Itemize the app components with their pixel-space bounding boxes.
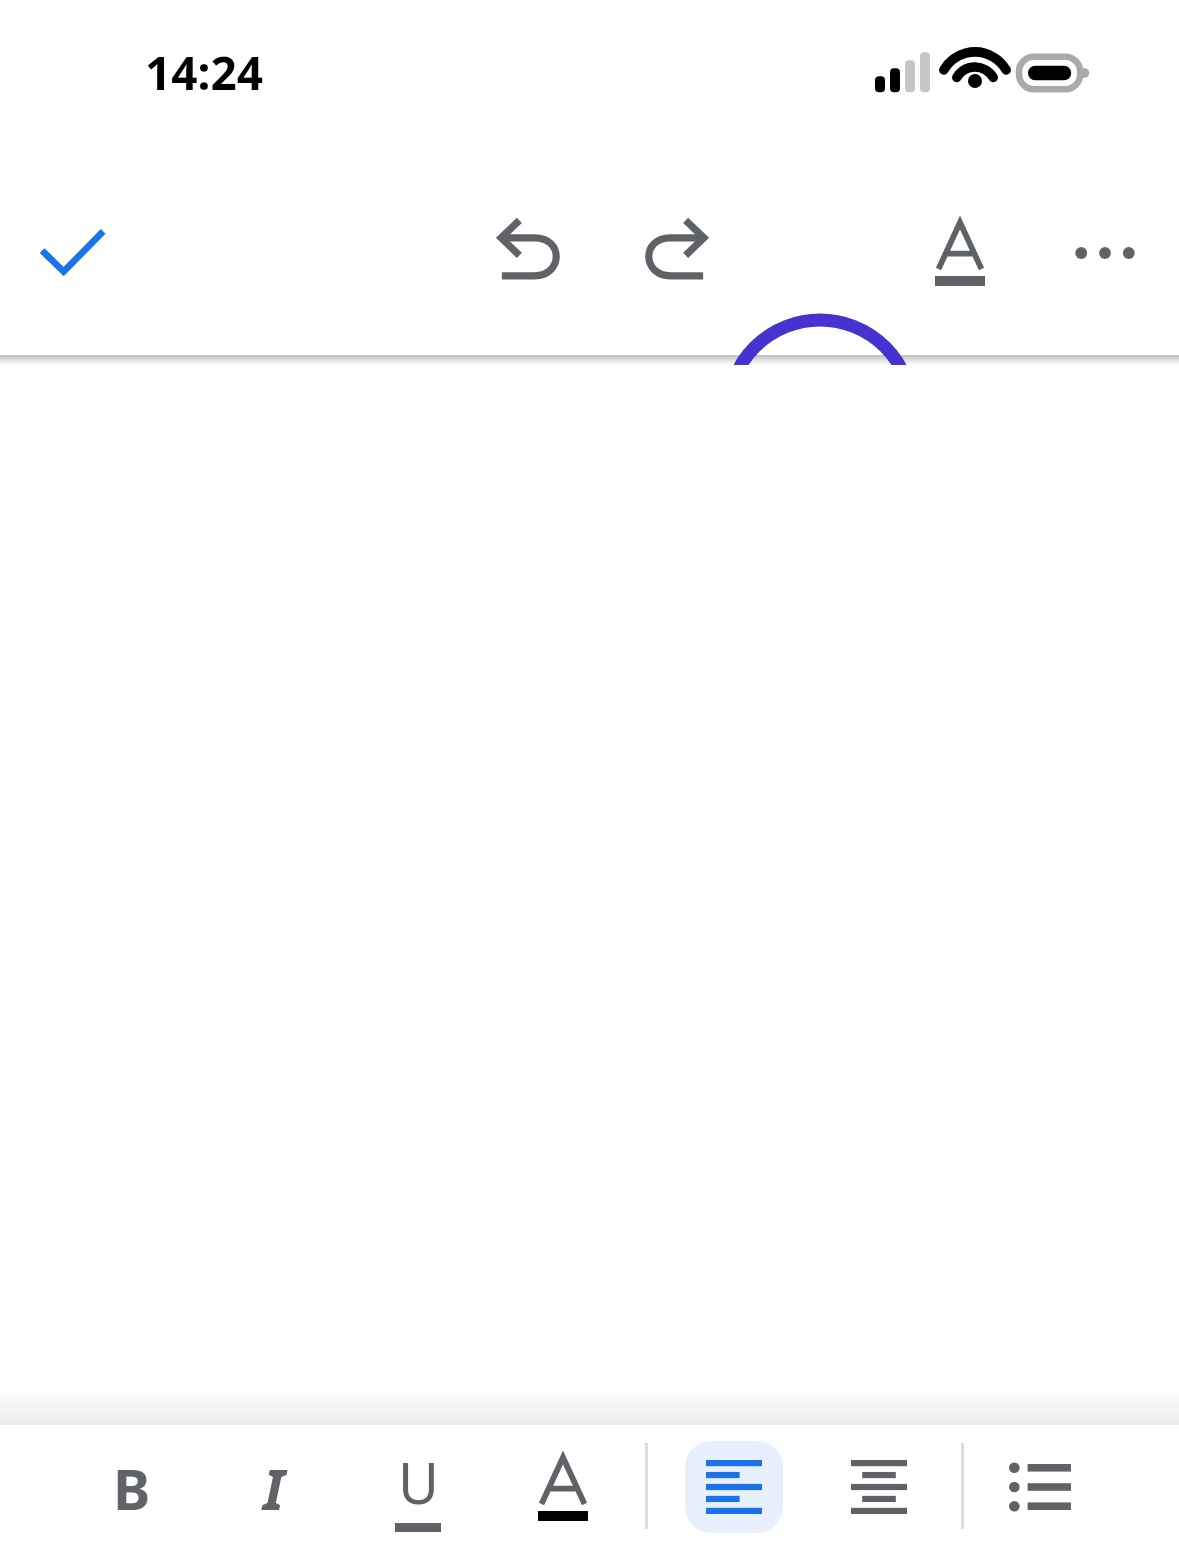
button[interactable]: Text formatting	[912, 205, 1008, 301]
button[interactable]: Text color	[505, 1430, 621, 1546]
button[interactable]: Bold	[74, 1430, 190, 1546]
button[interactable]: Align center	[830, 1441, 928, 1533]
button[interactable]: Insert	[720, 312, 920, 512]
staticText: 14:24	[145, 41, 264, 104]
button[interactable]: Undo	[482, 205, 578, 301]
button[interactable]: Bulleted list	[990, 1437, 1090, 1537]
button[interactable]: Italic	[216, 1430, 332, 1546]
button[interactable]: Done	[20, 201, 124, 305]
button[interactable]: Align left	[685, 1441, 783, 1533]
staticText: I	[263, 1450, 285, 1526]
staticText: U	[398, 1444, 439, 1520]
button[interactable]: More options	[1057, 205, 1153, 301]
button[interactable]: Underline	[360, 1430, 476, 1546]
staticText: B	[113, 1450, 151, 1526]
button[interactable]: Redo	[627, 205, 723, 301]
